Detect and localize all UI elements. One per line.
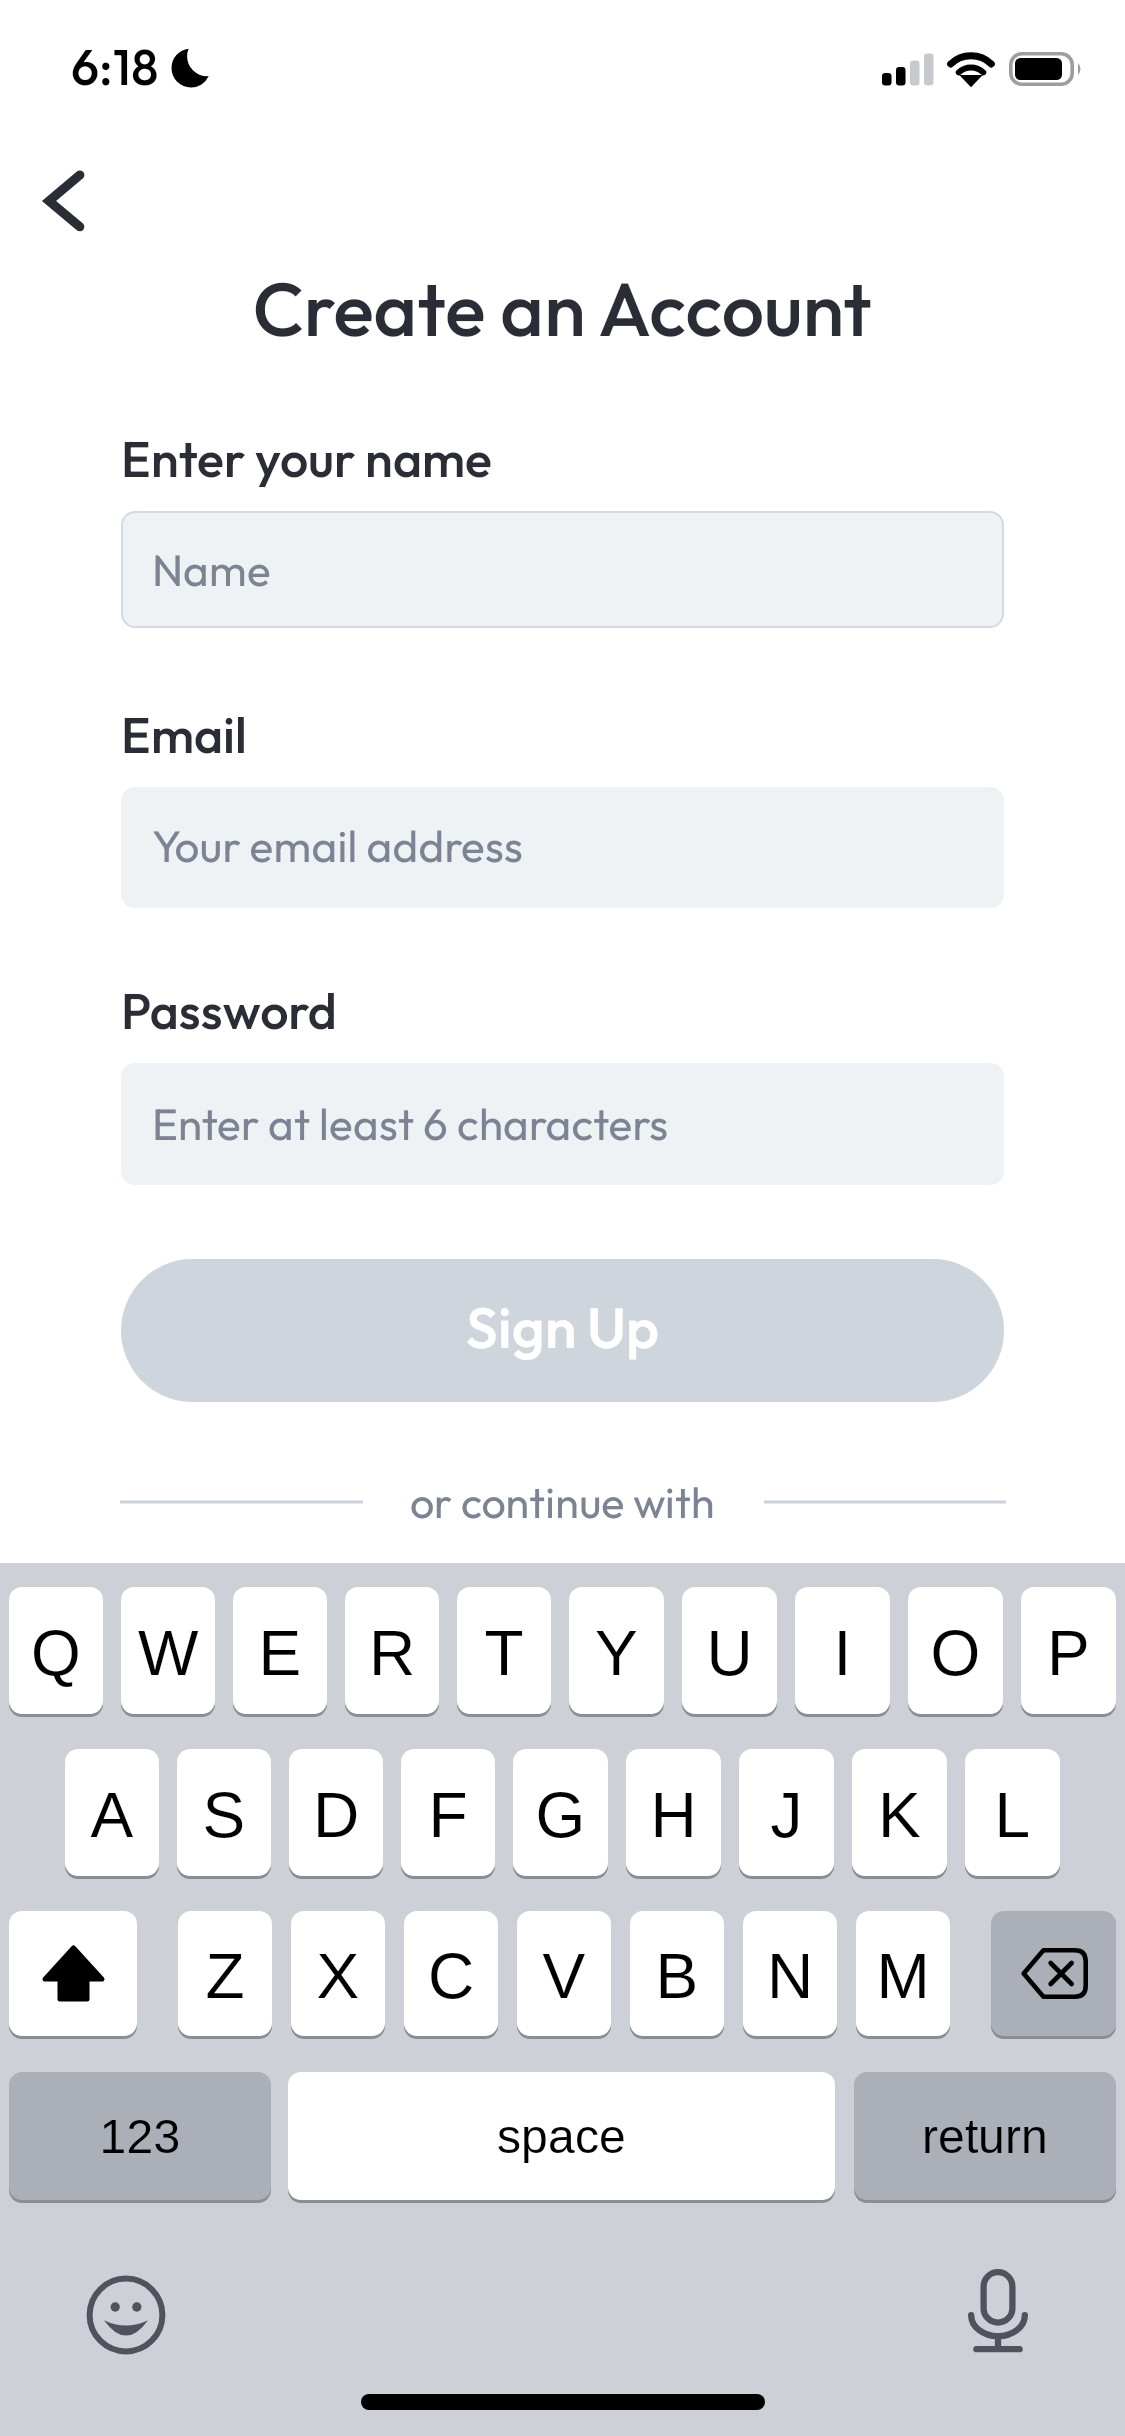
button[interactable]: [457, 1587, 551, 1714]
button[interactable]: [121, 787, 1004, 908]
button[interactable]: [852, 1749, 947, 1876]
button[interactable]: [121, 1063, 1004, 1185]
button[interactable]: [626, 1749, 721, 1876]
button[interactable]: [630, 1911, 724, 2036]
button[interactable]: [291, 1911, 385, 2036]
button[interactable]: [65, 1749, 159, 1876]
button[interactable]: [569, 1587, 664, 1714]
button[interactable]: [121, 1259, 1004, 1402]
button[interactable]: [854, 2072, 1116, 2200]
button[interactable]: [682, 1587, 777, 1714]
button[interactable]: [289, 1749, 383, 1876]
button[interactable]: Dictation: [956, 2269, 1040, 2353]
button[interactable]: Backspace: [991, 1911, 1116, 2036]
button[interactable]: Back: [16, 147, 126, 257]
button[interactable]: [401, 1749, 495, 1876]
button[interactable]: [345, 1587, 439, 1714]
button[interactable]: [9, 1587, 103, 1714]
button[interactable]: [908, 1587, 1003, 1714]
button[interactable]: [233, 1587, 327, 1714]
button[interactable]: [178, 1911, 272, 2036]
button[interactable]: Emoji keyboard: [85, 2274, 167, 2356]
button[interactable]: [177, 1749, 271, 1876]
button[interactable]: [121, 1587, 215, 1714]
button[interactable]: [404, 1911, 498, 2036]
button[interactable]: [743, 1911, 837, 2036]
button[interactable]: [856, 1911, 950, 2036]
button[interactable]: [9, 2072, 271, 2200]
button[interactable]: [1021, 1587, 1116, 1714]
button[interactable]: [517, 1911, 611, 2036]
button[interactable]: [121, 511, 1004, 628]
button[interactable]: [288, 2072, 835, 2200]
button[interactable]: [965, 1749, 1060, 1876]
button[interactable]: [513, 1749, 608, 1876]
button[interactable]: [795, 1587, 890, 1714]
button[interactable]: [739, 1749, 834, 1876]
button[interactable]: Shift: [9, 1911, 137, 2036]
